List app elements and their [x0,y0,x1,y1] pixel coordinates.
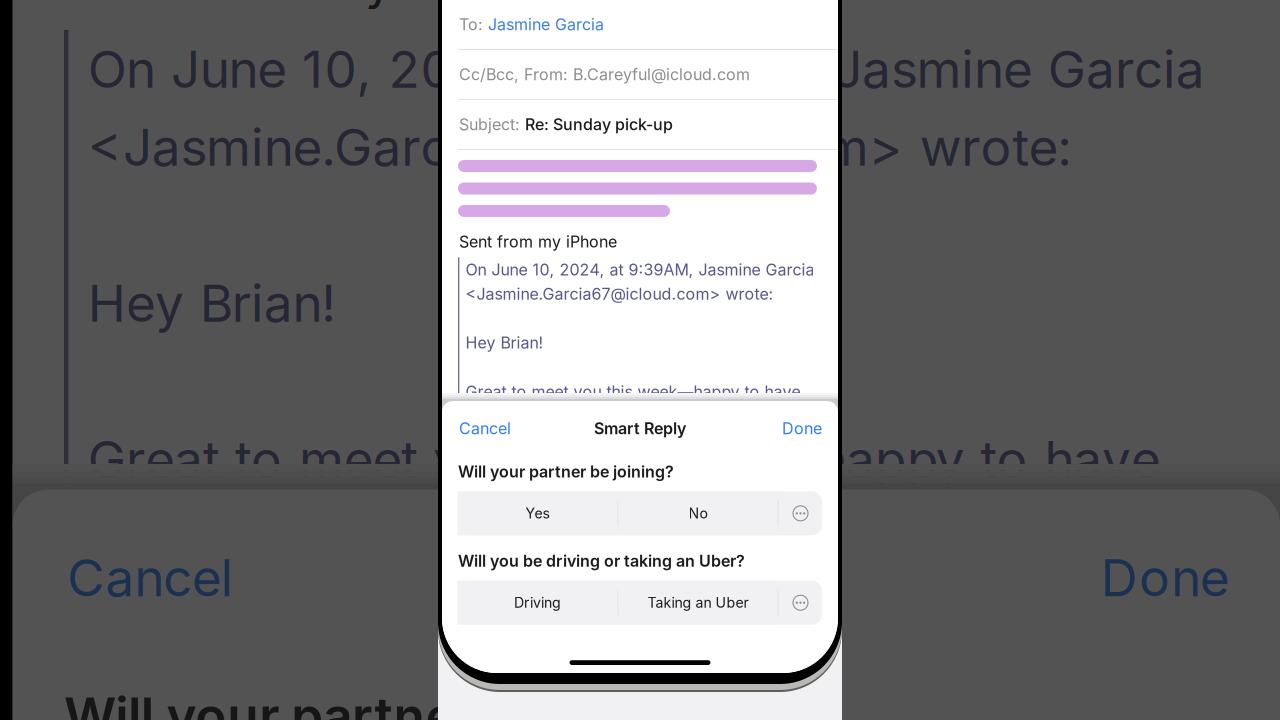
staticText: Driving [514,594,561,611]
button[interactable]: No [618,491,777,535]
staticText: Cancel [459,419,511,438]
staticText: On June 10, 2024, at 9:39AM, Jasmine Gar… [465,260,814,279]
button[interactable]: Done [782,419,822,438]
staticText: Will your partner be joining? [458,462,674,481]
button[interactable]: Yes [457,491,617,535]
staticText: <Jasmine.Garcia67@icloud.com> wrote: [465,284,773,304]
staticText: No [688,505,707,522]
staticText: To: [459,15,483,34]
staticText: Sent from my iPhone [459,232,617,251]
staticText: Subject: [459,115,520,134]
staticText: Re: Sunday pick-up [525,115,673,134]
staticText: Jasmine Garcia [488,15,604,34]
staticText: B.Careyful@icloud.com [573,65,750,84]
staticText: Cc/Bcc, From: [459,65,568,84]
staticText: Hey Brian! [465,333,543,352]
staticText: her over on Sunday. [465,406,616,426]
button[interactable]: Driving [457,581,617,625]
button[interactable]: Cancel [459,419,511,438]
staticText: Great to meet you this week—happy to hav… [465,382,800,401]
button[interactable]: More suggestions [778,491,822,535]
staticText: Will you be driving or taking an Uber? [458,551,745,571]
button[interactable]: More suggestions [778,581,822,625]
staticText: Done [782,419,822,438]
staticText: Taking an Uber [647,594,748,611]
staticText: Yes [525,505,549,522]
staticText: Smart Reply [594,419,686,438]
button[interactable]: Taking an Uber [618,581,777,625]
